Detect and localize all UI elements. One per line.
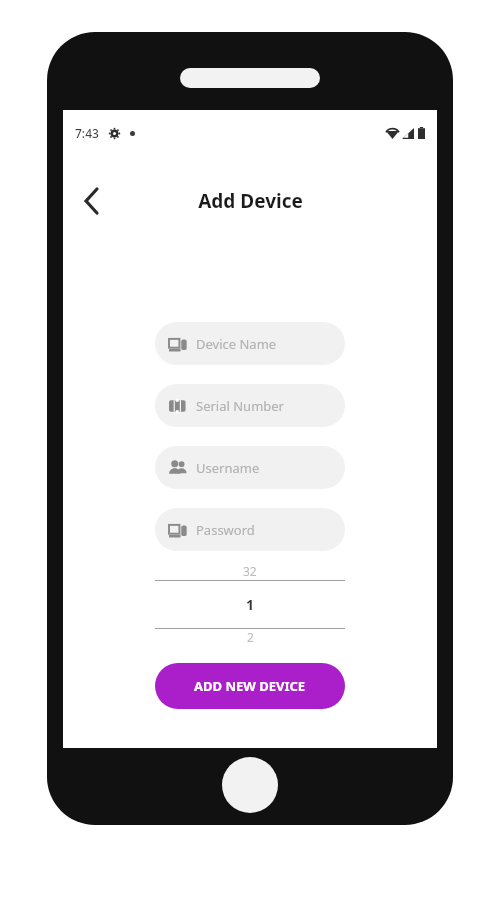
staticText: Serial Number (196, 397, 284, 415)
staticText: 2 (247, 629, 254, 645)
staticText: Add Device (198, 188, 303, 214)
button[interactable]: Back (69, 179, 113, 223)
staticText: 7:43 (75, 125, 99, 141)
button[interactable]: Device Name (155, 322, 345, 365)
button[interactable]: Home (222, 757, 278, 813)
button[interactable]: ADD NEW DEVICE (155, 663, 345, 709)
staticText: 1 (246, 595, 255, 614)
button[interactable]: Serial Number (155, 384, 345, 427)
staticText: Username (196, 459, 260, 477)
button[interactable]: Username (155, 446, 345, 489)
staticText: Password (196, 521, 255, 539)
staticText: 32 (243, 563, 257, 579)
staticText: Device Name (196, 335, 277, 353)
staticText: ADD NEW DEVICE (194, 677, 306, 695)
button[interactable]: Password (155, 508, 345, 551)
